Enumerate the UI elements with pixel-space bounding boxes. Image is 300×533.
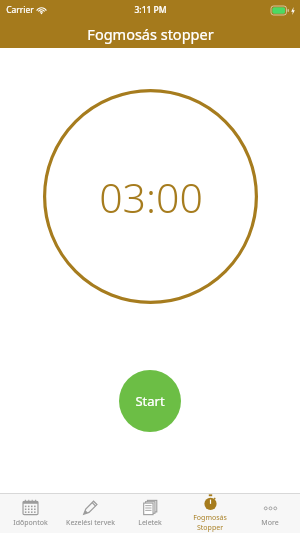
staticText: 3:11 PM <box>134 4 167 16</box>
button[interactable]: Toothbrushing timer <box>180 493 240 533</box>
staticText: Start <box>135 392 165 410</box>
other: Appointments <box>22 499 39 516</box>
button[interactable]: Results <box>120 493 180 533</box>
other: Toothbrushing timer <box>202 494 219 511</box>
button[interactable]: Appointments <box>0 493 60 533</box>
button[interactable]: Start <box>119 370 181 432</box>
staticText: Kezelési tervek <box>66 518 115 528</box>
staticText: Carrier <box>6 4 34 16</box>
other: Results <box>142 499 159 516</box>
button[interactable]: Treatment plans <box>60 493 120 533</box>
staticText: Fogmosás Stopper <box>180 513 240 533</box>
other: Battery <box>271 6 289 15</box>
staticText: Időpontok <box>13 518 48 528</box>
button[interactable]: More <box>240 493 300 533</box>
staticText: More <box>261 518 279 528</box>
staticText: Leletek <box>138 518 162 528</box>
staticText: Fogmosás stopper <box>87 24 214 44</box>
other: Treatment plans <box>82 499 99 516</box>
other: More <box>262 499 279 516</box>
other: Wi-Fi <box>37 6 46 15</box>
staticText: 03:00 <box>99 169 203 225</box>
